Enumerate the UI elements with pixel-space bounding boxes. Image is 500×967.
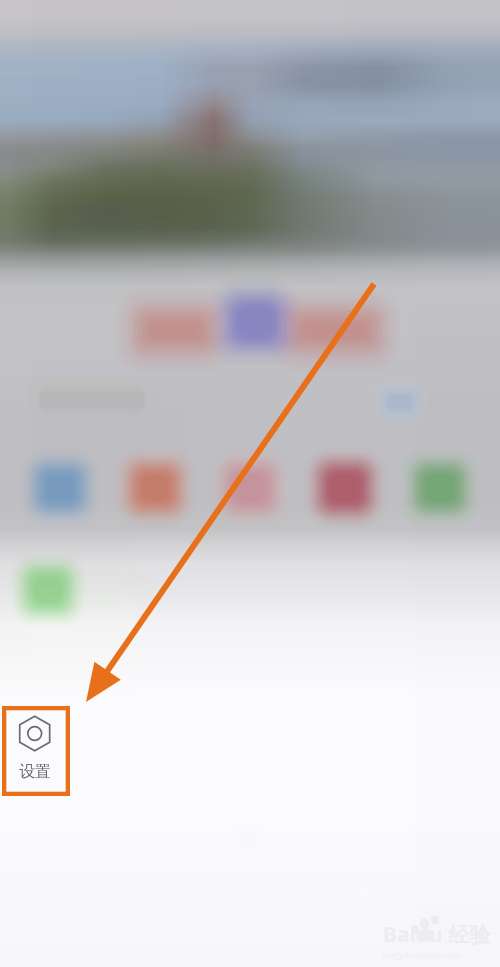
button[interactable]: 设置 Settings — [2, 706, 70, 796]
staticText: 设置 — [19, 762, 51, 782]
staticText: Baidu 经验 — [383, 920, 491, 949]
